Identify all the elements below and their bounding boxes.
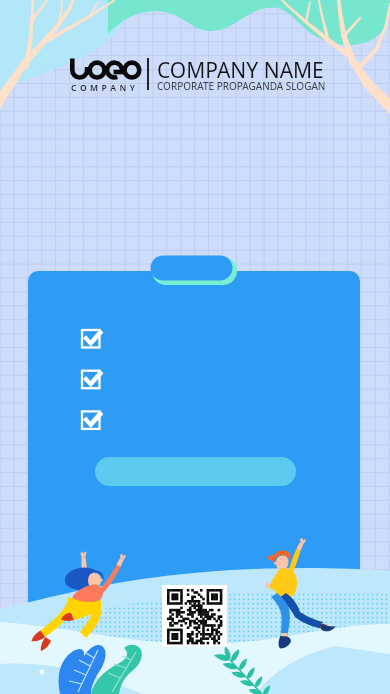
staticText: CORPORATE PROPAGANDA SLOGAN bbox=[157, 79, 326, 93]
staticText: COMPANY NAME bbox=[157, 56, 324, 85]
staticText: C O M P A N Y bbox=[71, 82, 136, 94]
button[interactable]: COMPANY NAME bbox=[0, 0, 390, 694]
